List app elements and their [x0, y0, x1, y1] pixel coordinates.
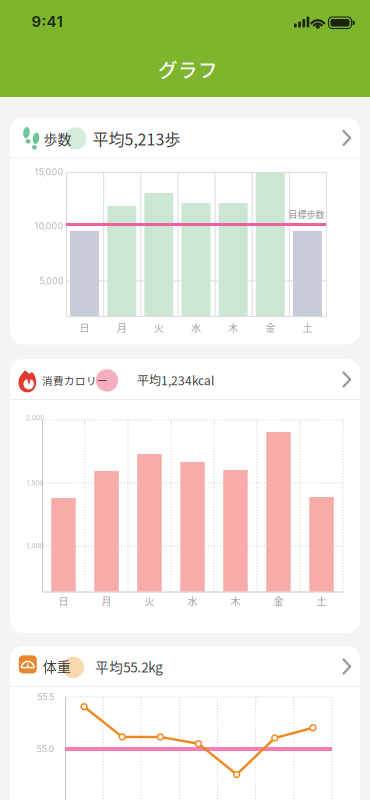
button[interactable]: 体重	[10, 646, 360, 800]
staticText: 体重	[43, 656, 71, 676]
staticText: 平均5,213歩	[92, 127, 180, 150]
staticText: 金	[265, 320, 275, 335]
staticText: 火	[154, 320, 164, 335]
staticText: 木	[230, 594, 240, 608]
staticText: 10,000	[34, 221, 63, 231]
staticText: 水	[191, 320, 201, 335]
staticText: グラフ	[158, 55, 218, 83]
staticText: 歩数	[43, 128, 71, 149]
staticText: 目標歩数	[288, 207, 324, 220]
button[interactable]: 消費カロリー	[10, 359, 360, 633]
staticText: 金	[273, 594, 283, 608]
staticText: 日	[58, 594, 68, 608]
staticText: 平均55.2kg	[95, 657, 163, 676]
staticText: 水	[187, 594, 197, 608]
staticText: 月	[101, 594, 111, 608]
staticText: 月	[117, 320, 127, 335]
staticText: 15,000	[34, 167, 63, 177]
staticText: 土	[316, 594, 326, 608]
staticText: 55.5	[37, 692, 54, 702]
staticText: 9:41	[31, 12, 62, 30]
staticText: 1,500	[26, 479, 43, 487]
button[interactable]: 歩数	[10, 117, 360, 344]
staticText: 木	[228, 320, 238, 335]
staticText: 土	[302, 320, 312, 335]
staticText: 5,000	[39, 276, 64, 286]
staticText: 平均1,234kcal	[137, 371, 214, 389]
staticText: 1,000	[26, 542, 43, 550]
staticText: 火	[144, 594, 154, 608]
staticText: 55.0	[36, 744, 54, 754]
staticText: 日	[80, 320, 90, 335]
staticText: 消費カロリー	[42, 373, 108, 388]
staticText: 2,000	[26, 414, 44, 422]
